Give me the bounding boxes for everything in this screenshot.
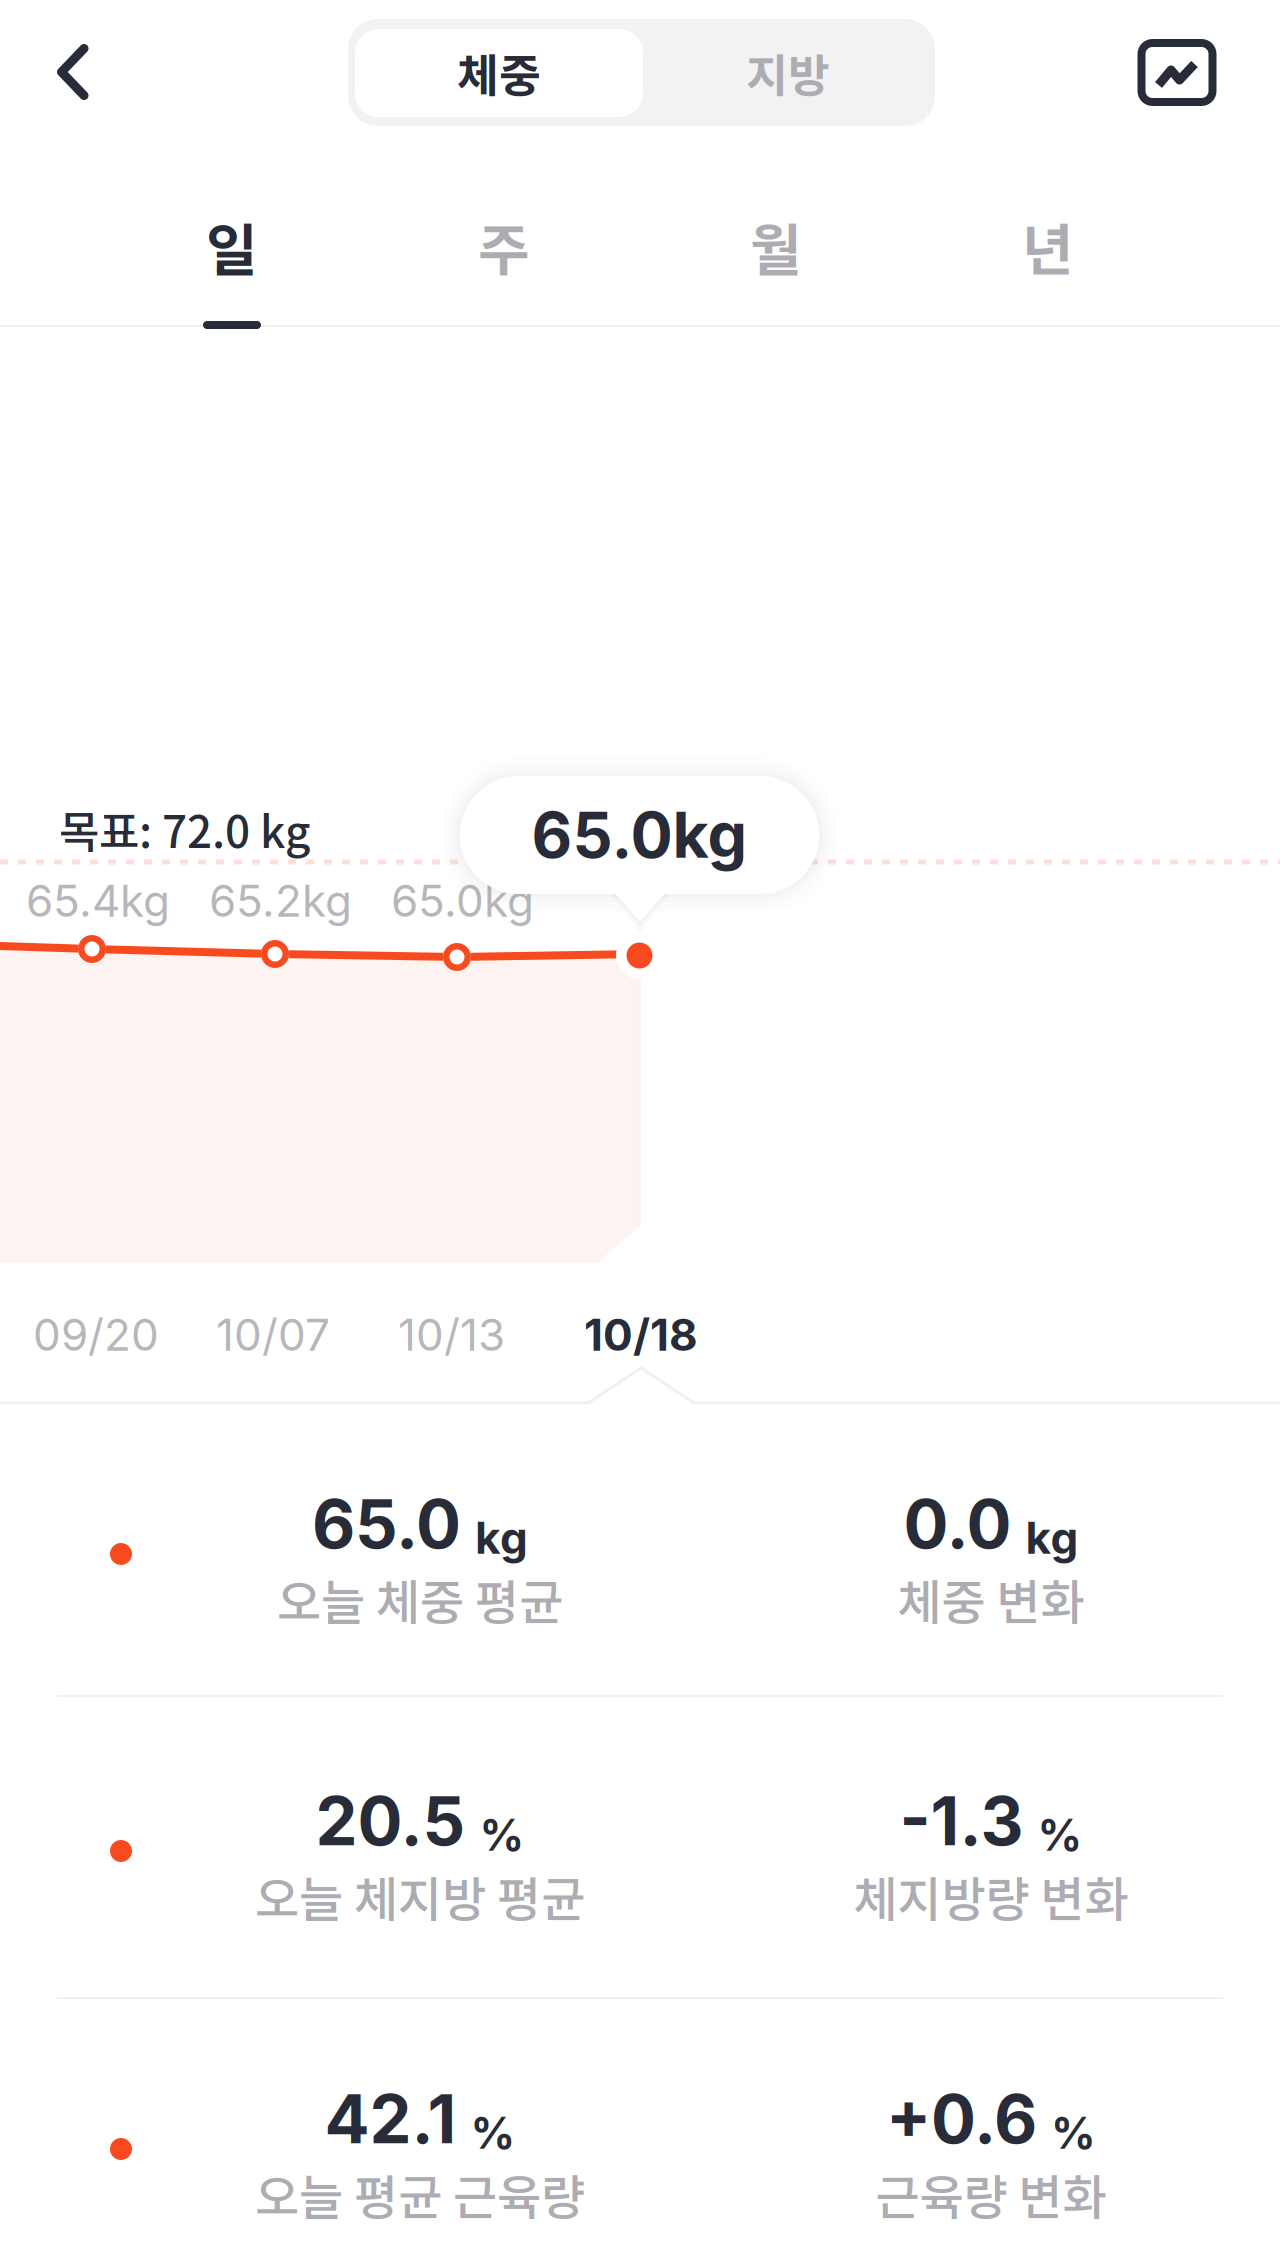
staticText: %: [479, 1808, 524, 1861]
button[interactable]: 일: [96, 145, 368, 329]
staticText: 10/07: [216, 1308, 330, 1361]
staticText: 근육량 변화: [875, 2159, 1106, 2229]
staticText: +0.6: [886, 2079, 1037, 2159]
staticText: 주: [478, 205, 530, 287]
staticText: 오늘 체중 평균: [277, 1564, 563, 1634]
staticText: 오늘 평균 근육량: [255, 2159, 585, 2229]
staticText: 월: [750, 205, 802, 287]
button[interactable]: 년: [912, 145, 1184, 329]
staticText: 체중: [457, 40, 541, 105]
staticText: 일: [206, 205, 258, 287]
staticText: 10/13: [398, 1308, 505, 1361]
staticText: 65.2kg: [209, 874, 352, 927]
staticText: %: [1051, 2106, 1096, 2159]
staticText: 체중 변화: [897, 1564, 1084, 1634]
button[interactable]: Back: [13, 0, 133, 145]
staticText: 오늘 체지방 평균: [255, 1861, 585, 1931]
staticText: 지방: [746, 40, 830, 105]
staticText: 목표: 72.0 kg: [59, 797, 310, 861]
staticText: 65.0: [312, 1484, 461, 1564]
button[interactable]: 65.0: [0, 1404, 1280, 1695]
staticText: 체지방량 변화: [853, 1861, 1128, 1931]
staticText: %: [1037, 1808, 1082, 1861]
button[interactable]: 월: [640, 145, 912, 329]
staticText: kg: [1025, 1511, 1078, 1564]
button[interactable]: Chart: [1112, 0, 1242, 145]
staticText: 09/20: [33, 1308, 159, 1361]
button[interactable]: 주: [368, 145, 640, 329]
staticText: 42.1: [324, 2079, 456, 2159]
staticText: 65.4kg: [26, 874, 170, 927]
button[interactable]: 42.1: [0, 1999, 1280, 2266]
staticText: 65.0kg: [391, 874, 534, 927]
button[interactable]: 지방: [644, 19, 932, 126]
staticText: 65.0kg: [531, 797, 747, 873]
button[interactable]: 20.5: [0, 1701, 1280, 2003]
button[interactable]: 체중: [355, 19, 643, 126]
staticText: 0.0: [903, 1484, 1011, 1564]
staticText: kg: [475, 1511, 528, 1564]
staticText: 10/18: [584, 1308, 698, 1361]
staticText: -1.3: [899, 1781, 1023, 1861]
staticText: 20.5: [315, 1781, 465, 1861]
staticText: %: [470, 2106, 515, 2159]
staticText: 년: [1022, 205, 1074, 287]
